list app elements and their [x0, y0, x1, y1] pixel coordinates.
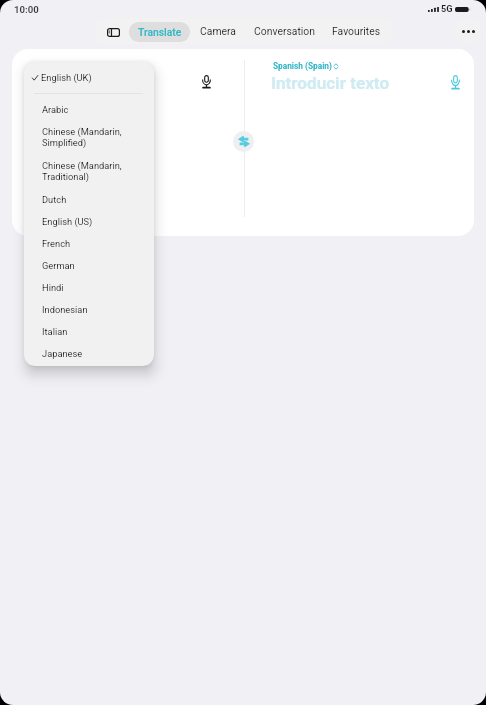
staticText: Dutch	[42, 194, 67, 205]
staticText: French	[42, 238, 71, 249]
button[interactable]: Spanish (Spain)	[271, 60, 340, 72]
button[interactable]: Chinese (Mandarin, Simplified)	[24, 120, 154, 154]
staticText: Introducir texto	[271, 73, 390, 93]
staticText: Japanese	[42, 348, 83, 359]
staticText: English (UK)	[41, 72, 92, 83]
staticText: Hindi	[42, 282, 64, 293]
button[interactable]: More options	[455, 18, 481, 44]
staticText: Indonesian	[42, 304, 88, 315]
button[interactable]: German	[24, 254, 154, 276]
button[interactable]: Dutch	[24, 188, 154, 210]
staticText: Chinese (Mandarin, Simplified)	[42, 126, 122, 149]
button[interactable]: Chinese (Mandarin, Traditional)	[24, 154, 154, 188]
button[interactable]: Arabic	[24, 98, 154, 120]
button[interactable]: English (US)	[24, 210, 154, 232]
staticText: English (US)	[42, 216, 93, 227]
button[interactable]: Hindi	[24, 276, 154, 298]
staticText: German	[42, 260, 75, 271]
staticText: Chinese (Mandarin, Traditional)	[42, 160, 122, 183]
button[interactable]: Swap languages	[233, 131, 254, 152]
button[interactable]: Conversation	[252, 18, 317, 44]
button[interactable]: Italian	[24, 320, 154, 342]
button[interactable]: Show sidebar	[100, 19, 127, 44]
staticText: Camera	[200, 25, 237, 37]
staticText: Italian	[42, 326, 68, 337]
staticText: Arabic	[42, 104, 69, 115]
button[interactable]: English (UK)	[24, 62, 154, 93]
staticText: Favourites	[332, 25, 381, 37]
button[interactable]: Translate	[129, 22, 190, 42]
staticText: Translate	[138, 26, 182, 38]
button[interactable]: Indonesian	[24, 298, 154, 320]
button[interactable]: Speak English	[193, 68, 220, 95]
button[interactable]: Speak Spanish	[442, 68, 469, 95]
staticText: Conversation	[254, 25, 316, 37]
staticText: 10:00	[14, 4, 39, 15]
button[interactable]: French	[24, 232, 154, 254]
button[interactable]: Camera	[197, 18, 239, 44]
button[interactable]: Favourites	[330, 18, 382, 44]
staticText: Spanish (Spain)	[273, 61, 332, 71]
button[interactable]: Japanese	[24, 342, 154, 364]
staticText: 5G	[441, 3, 453, 14]
